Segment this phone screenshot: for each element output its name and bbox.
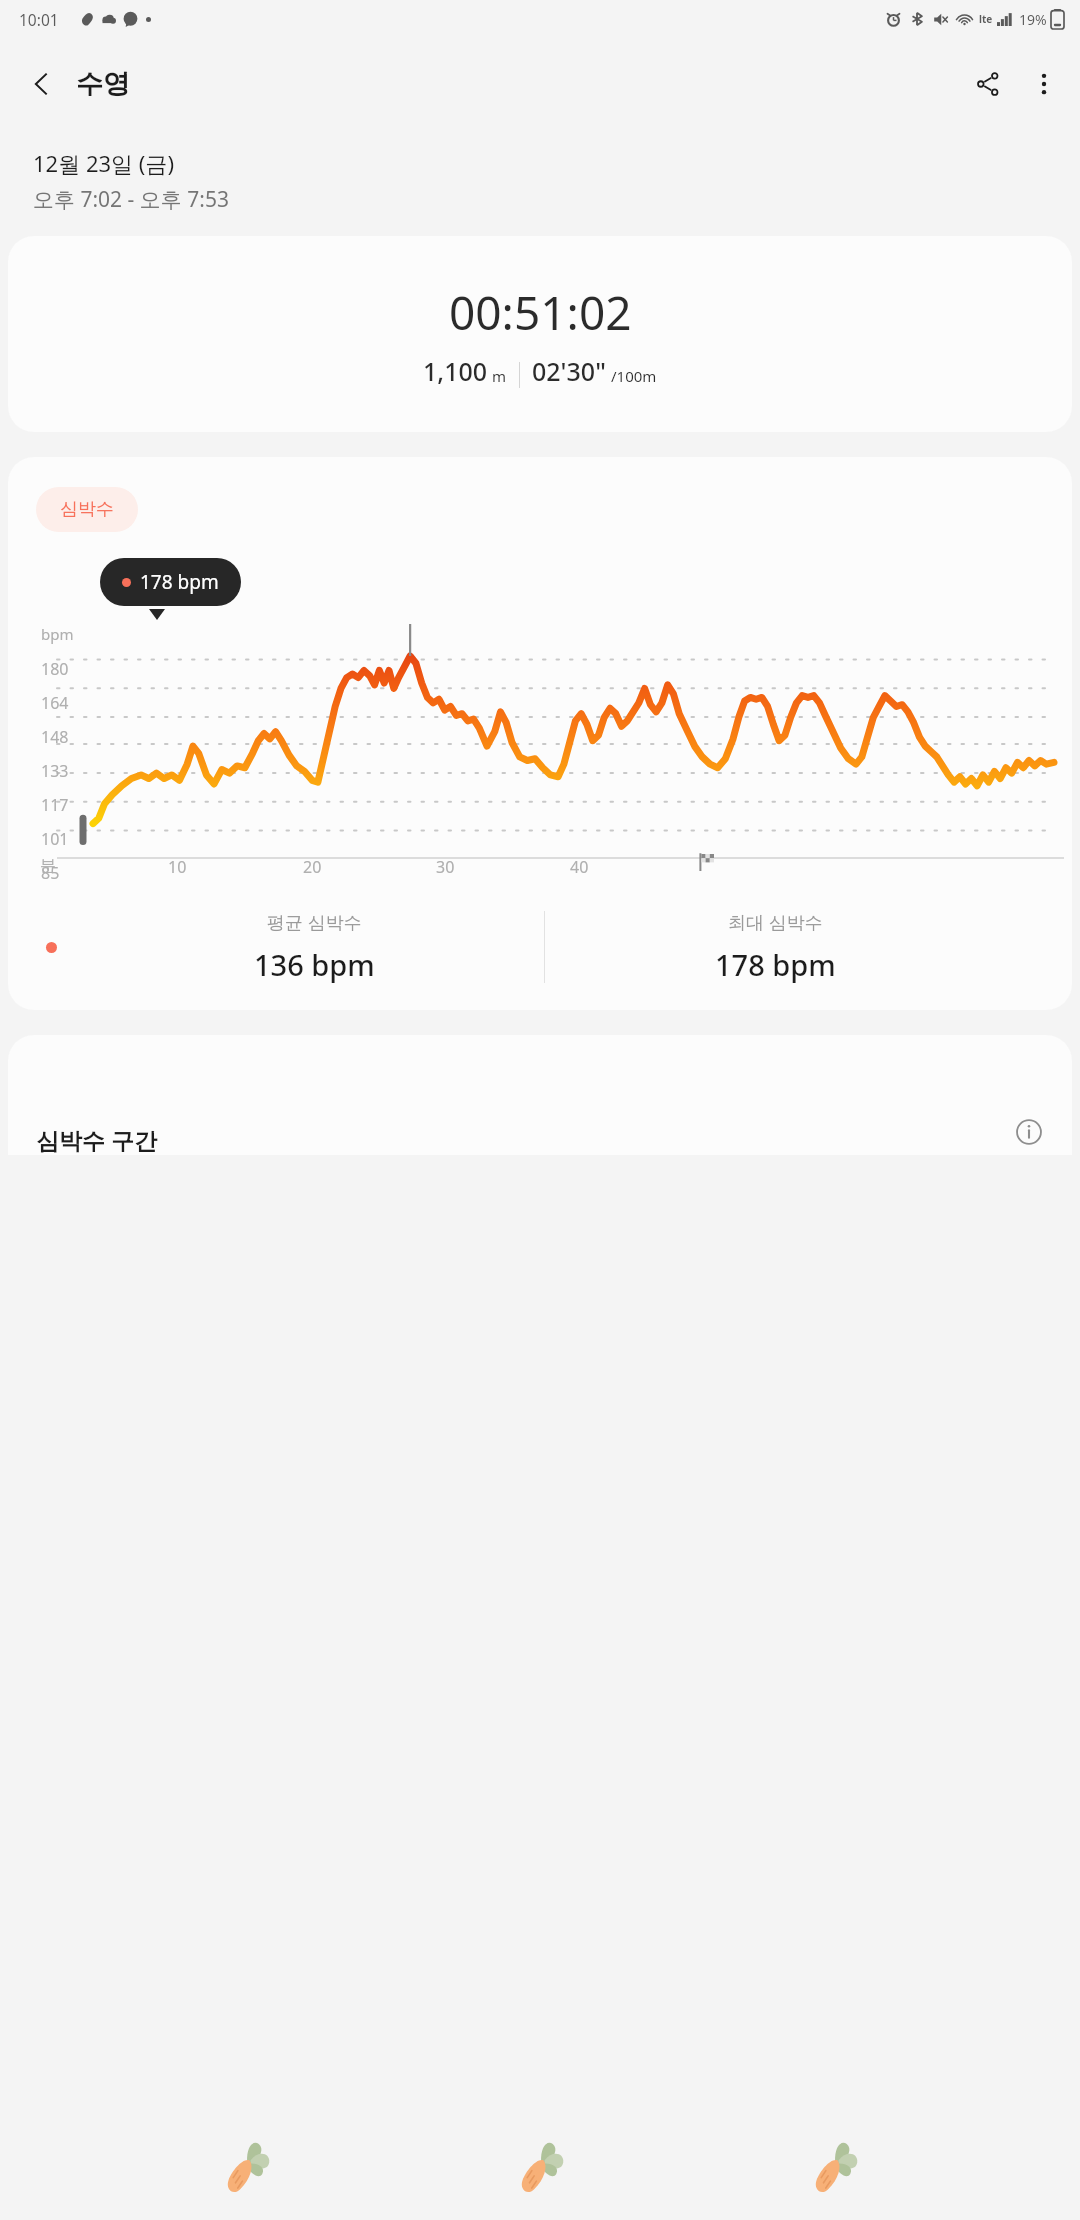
- staticText: lte: [979, 12, 993, 26]
- staticText: 오후 7:02 - 오후 7:53: [33, 185, 229, 214]
- staticText: 심박수: [60, 498, 114, 521]
- button[interactable]: Tab 2: [492, 2118, 588, 2214]
- staticText: 02'30": [532, 354, 606, 388]
- staticText: 1,100: [423, 354, 488, 388]
- staticText: bpm: [41, 624, 74, 644]
- staticText: 136 bpm: [254, 945, 375, 984]
- staticText: 164: [41, 692, 69, 714]
- staticText: 40: [570, 856, 589, 878]
- staticText: 101: [41, 828, 69, 850]
- staticText: 심박수 구간: [36, 1124, 157, 1155]
- staticText: 최대 심박수: [728, 910, 823, 935]
- other: Finish: [698, 852, 718, 872]
- button[interactable]: 심박수: [8, 457, 1072, 1010]
- staticText: 분: [40, 856, 56, 876]
- staticText: 12월 23일 (금): [33, 148, 174, 178]
- staticText: m: [492, 366, 507, 386]
- staticText: 평균 심박수: [267, 910, 362, 935]
- staticText: 133: [41, 760, 69, 782]
- staticText: 148: [41, 726, 69, 748]
- staticText: /100m: [611, 366, 657, 386]
- button[interactable]: 심박수 구간: [8, 1035, 1072, 1155]
- button[interactable]: Back: [14, 56, 70, 112]
- button[interactable]: 심박수: [36, 487, 138, 532]
- staticText: 19%: [1019, 10, 1047, 29]
- staticText: 85: [41, 862, 60, 884]
- button[interactable]: More options: [1016, 56, 1072, 112]
- staticText: 30: [436, 856, 455, 878]
- button[interactable]: Share: [960, 56, 1016, 112]
- staticText: 수영: [76, 67, 130, 101]
- button[interactable]: Information: [1006, 1109, 1052, 1155]
- staticText: 10: [168, 856, 187, 878]
- staticText: 20: [303, 856, 322, 878]
- staticText: 117: [41, 794, 69, 816]
- staticText: 178 bpm: [715, 945, 836, 984]
- staticText: 10:01: [19, 9, 59, 30]
- staticText: 180: [41, 658, 69, 680]
- button[interactable]: Tab 3: [786, 2118, 882, 2214]
- staticText: 00:51:02: [449, 281, 632, 344]
- staticText: 178 bpm: [140, 569, 219, 595]
- button[interactable]: 00:51:02: [8, 236, 1072, 432]
- button[interactable]: Tab 1: [198, 2118, 294, 2214]
